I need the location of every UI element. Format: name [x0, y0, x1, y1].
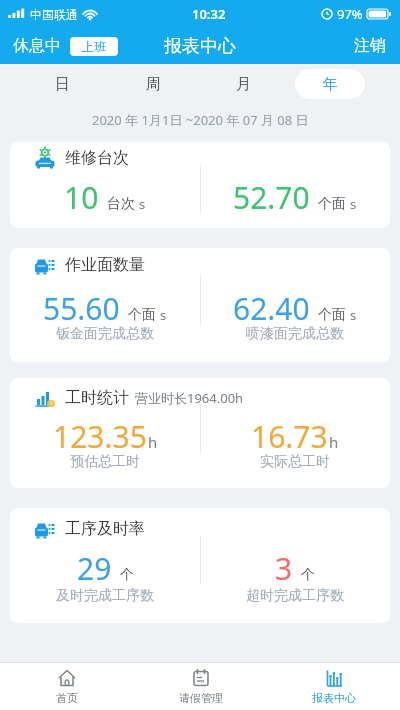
- staticText: 29: [77, 548, 112, 589]
- staticText: 10: [64, 177, 99, 218]
- staticText: 预估总工时: [70, 453, 140, 471]
- staticText: 52.70: [233, 177, 310, 218]
- button[interactable]: 月: [221, 69, 265, 99]
- staticText: s: [350, 195, 357, 213]
- staticText: 123.35: [53, 416, 147, 457]
- staticText: 2020 年 1月1日 ~2020 年 07 月 08 日: [92, 111, 309, 129]
- staticText: 日: [55, 75, 70, 94]
- button[interactable]: 工时统计: [10, 378, 390, 488]
- button[interactable]: 维修台次: [10, 142, 390, 228]
- staticText: 及时完成工序数: [56, 587, 154, 605]
- staticText: 个面: [128, 306, 156, 324]
- staticText: 个面: [318, 195, 346, 213]
- staticText: 周: [146, 75, 161, 94]
- staticText: 钣金面完成总数: [56, 325, 154, 343]
- staticText: 个面: [318, 306, 346, 324]
- button[interactable]: 请假管理: [134, 663, 267, 710]
- staticText: 中国联通: [30, 7, 78, 22]
- button[interactable]: 注销: [354, 36, 400, 56]
- button[interactable]: 上班: [70, 37, 118, 56]
- button[interactable]: 作业面数量: [10, 248, 390, 362]
- staticText: 3: [275, 548, 293, 589]
- staticText: 16.73: [251, 416, 328, 457]
- staticText: s: [160, 306, 167, 324]
- staticText: 10:32: [192, 5, 226, 23]
- staticText: 上班: [82, 39, 106, 54]
- staticText: 实际总工时: [260, 453, 330, 471]
- button[interactable]: 日: [40, 69, 84, 99]
- staticText: 55.60: [43, 288, 120, 329]
- staticText: 维修台次: [65, 148, 129, 168]
- button[interactable]: 工序及时率: [10, 508, 390, 623]
- staticText: s: [139, 195, 146, 213]
- staticText: 首页: [56, 691, 78, 705]
- staticText: 工序及时率: [65, 519, 145, 539]
- button[interactable]: 周: [131, 69, 175, 99]
- staticText: 年: [323, 75, 338, 94]
- staticText: 62.40: [233, 288, 310, 329]
- staticText: 月: [236, 75, 251, 94]
- staticText: 97%: [337, 5, 363, 23]
- staticText: 注销: [354, 36, 386, 56]
- staticText: 作业面数量: [65, 255, 145, 275]
- staticText: 个: [301, 566, 315, 584]
- staticText: 个: [120, 566, 134, 584]
- button[interactable]: 首页: [0, 663, 134, 710]
- staticText: s: [350, 306, 357, 324]
- staticText: 报表中心: [164, 35, 236, 58]
- button[interactable]: 年: [295, 69, 365, 99]
- staticText: 营业时长1964.00h: [135, 389, 244, 407]
- staticText: 报表中心: [312, 691, 356, 705]
- staticText: h: [148, 432, 158, 452]
- staticText: 工时统计: [65, 388, 129, 408]
- staticText: 台次: [107, 195, 135, 213]
- staticText: 喷漆面完成总数: [246, 325, 344, 343]
- staticText: h: [329, 432, 339, 452]
- staticText: 休息中: [13, 36, 61, 56]
- staticText: 超时完成工序数: [246, 587, 344, 605]
- button[interactable]: 报表中心: [267, 663, 400, 710]
- staticText: 请假管理: [179, 691, 223, 705]
